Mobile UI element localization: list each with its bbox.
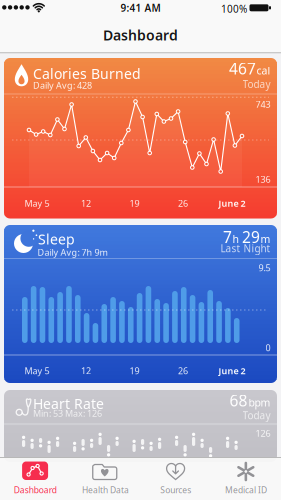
staticText: Medical ID [225,484,267,495]
staticText: 68 [229,390,247,411]
button[interactable]: Medical ID [211,457,281,500]
staticText: 19 [129,197,139,209]
button[interactable]: Sleep [4,225,277,383]
staticText: Min: 53 Max: 126 [33,407,102,419]
staticText: Daily Avg: 7h 9m [37,246,107,258]
staticText: m [260,232,270,246]
button[interactable]: Sources [140,457,211,500]
staticText: 29 [242,227,260,247]
staticText: Today [242,409,270,422]
staticText: 9:41 AM [120,1,160,14]
staticText: Heart Rate [33,394,104,413]
staticText: 19 [129,365,139,377]
staticText: 26 [178,197,188,209]
staticText: Calories Burned [33,64,141,83]
staticText: 12 [81,365,91,377]
button[interactable]: Dashboard [0,457,70,500]
staticText: 136 [255,173,270,185]
staticText: June 2 [218,197,245,209]
staticText: Dashboard [14,484,57,495]
button[interactable]: Calories Burned [4,58,277,218]
staticText: 467 [229,58,256,79]
staticText: Health Data [82,484,129,495]
button[interactable]: Health Data [70,457,140,500]
staticText: h [232,232,241,246]
staticText: 7 [223,227,232,247]
staticText: June 2 [218,365,245,377]
staticText: May 5 [24,365,49,377]
staticText: 26 [178,365,188,377]
staticText: Dashboard [103,26,178,44]
staticText: Sources [160,484,191,495]
staticText: Daily Avg: 428 [33,79,92,91]
staticText: Sleep [38,230,75,248]
staticText: Last Night [220,242,270,255]
staticText: 9.5 [258,262,270,274]
staticText: May 5 [24,197,49,209]
staticText: Today [242,78,270,91]
staticText: cal [256,64,270,77]
button[interactable]: Heart Rate [4,390,277,462]
staticText: 743 [255,98,270,110]
staticText: 12 [81,197,91,209]
staticText: bpm [248,396,270,409]
staticText: 0 [265,342,270,354]
staticText: 100% [221,2,247,15]
staticText: 126 [255,427,270,439]
